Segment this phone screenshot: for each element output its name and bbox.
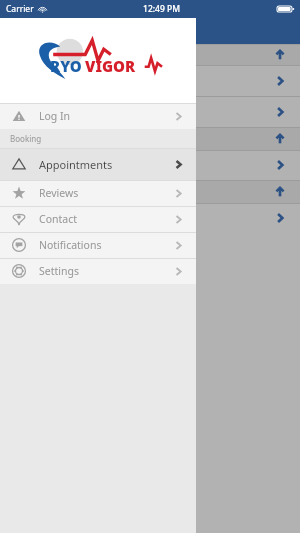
button[interactable]: Settings <box>0 258 196 284</box>
staticText: Reviews <box>39 186 173 200</box>
button[interactable]: Section <box>0 44 300 65</box>
button[interactable]: Item <box>0 203 300 232</box>
staticText: Contact <box>39 212 173 226</box>
staticText: Appointments <box>39 157 173 172</box>
staticText: 12:49 PM <box>143 3 180 15</box>
staticText: Notifications <box>39 238 173 252</box>
staticText: Settings <box>39 264 173 278</box>
staticText: Booking <box>10 133 42 144</box>
button[interactable]: Section <box>0 180 300 203</box>
button[interactable]: Item <box>0 96 300 127</box>
staticText: Log In <box>39 109 173 123</box>
button[interactable]: Reviews <box>0 180 196 206</box>
button[interactable]: Section <box>0 127 300 150</box>
staticText: VIGOR <box>85 56 136 76</box>
button[interactable]: Log In <box>0 103 196 129</box>
button[interactable]: Item <box>0 65 300 96</box>
staticText: Carrier <box>6 3 34 15</box>
button[interactable]: Appointments <box>0 148 196 180</box>
button[interactable]: Contact <box>0 206 196 232</box>
staticText: RYO <box>50 56 82 76</box>
button[interactable]: Notifications <box>0 232 196 258</box>
button[interactable]: Item <box>0 150 300 180</box>
